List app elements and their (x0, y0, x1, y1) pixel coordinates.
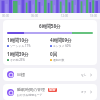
staticText: なし (81, 73, 87, 77)
staticText: 4時間09分 (50, 37, 72, 43)
staticText: 00:00 (2, 14, 10, 18)
staticText: 06:00 (31, 14, 39, 18)
staticText: 目標 (17, 72, 25, 77)
staticText: NEW (49, 88, 56, 92)
staticText: 1時間10分 (7, 37, 29, 43)
button[interactable]: 目標 (3, 68, 97, 81)
button[interactable]: 6時間58分 (3, 20, 97, 65)
staticText: 1時間39分 (7, 51, 29, 57)
other: Open (89, 73, 93, 77)
staticText: ソーシャル 17% (10, 44, 31, 48)
staticText: 睡眠時間の管理 (17, 87, 46, 92)
staticText: おやすみ時間モード (17, 93, 43, 97)
other: Open (89, 90, 93, 94)
staticText: その他 23% (10, 58, 25, 62)
staticText: 通知の数 (53, 58, 65, 62)
staticText: オフ (81, 90, 87, 94)
staticText: 18:00 (90, 14, 98, 18)
staticText: 12:00 (61, 14, 69, 18)
staticText: 0回 (50, 51, 58, 57)
staticText: エンタメ 60% (53, 44, 71, 48)
staticText: 6時間58分 (39, 23, 61, 29)
button[interactable]: 睡眠時間の管理 (3, 84, 97, 100)
